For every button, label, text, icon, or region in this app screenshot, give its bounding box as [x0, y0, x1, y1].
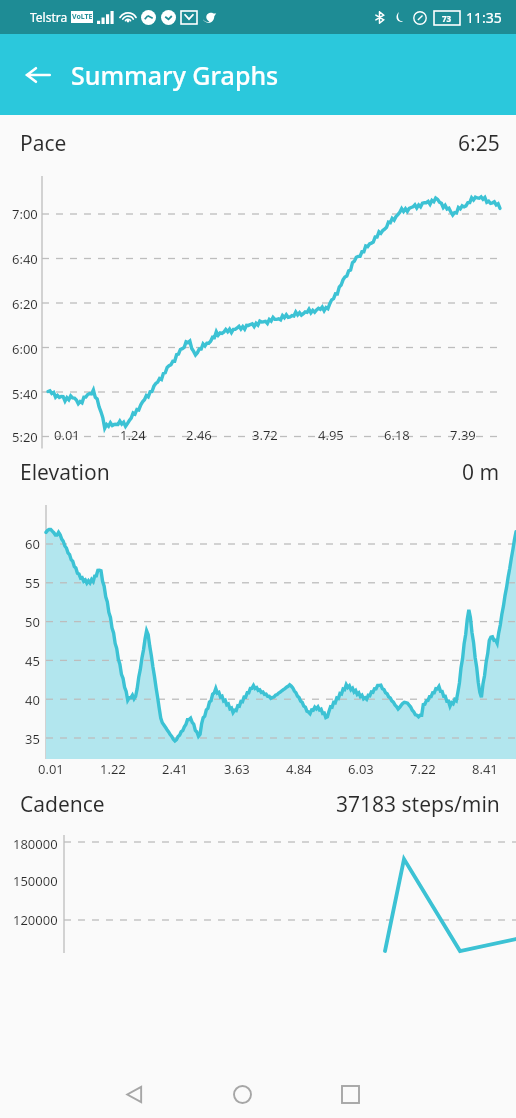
staticText: 37183 steps/min: [336, 790, 500, 819]
staticText: 55: [25, 574, 40, 592]
staticText: 7.22: [410, 760, 436, 778]
staticText: 1.22: [100, 760, 126, 778]
staticText: 180000: [13, 835, 58, 851]
staticText: 150000: [13, 872, 58, 890]
staticText: 45: [25, 652, 40, 670]
staticText: 6:20: [12, 295, 38, 313]
staticText: 7:00: [12, 205, 38, 223]
staticText: 5:20: [12, 428, 38, 446]
staticText: 3.63: [224, 760, 250, 778]
button[interactable]: Recent apps: [328, 1072, 372, 1116]
staticText: 5:40: [12, 385, 38, 403]
staticText: 60: [25, 535, 40, 553]
staticText: 2.46: [186, 426, 212, 444]
staticText: Elevation: [20, 458, 110, 487]
staticText: 50: [25, 613, 40, 631]
staticText: 7.39: [450, 426, 476, 444]
staticText: 0.01: [38, 760, 64, 778]
staticText: 40: [25, 691, 40, 709]
staticText: 73: [442, 13, 452, 24]
button[interactable]: Home: [220, 1072, 264, 1116]
staticText: 120000: [13, 911, 58, 929]
staticText: 0.01: [54, 426, 80, 444]
staticText: 1.24: [120, 426, 146, 444]
staticText: VoLTE: [72, 12, 93, 22]
staticText: 2.41: [162, 760, 188, 778]
staticText: 6:40: [12, 250, 38, 268]
staticText: 6.03: [348, 760, 374, 778]
staticText: 8.41: [472, 760, 498, 778]
staticText: 35: [25, 730, 40, 748]
staticText: 0 m: [462, 458, 500, 487]
staticText: Summary Graphs: [71, 58, 279, 92]
staticText: Telstra: [30, 9, 68, 25]
staticText: 3.72: [252, 426, 278, 444]
button[interactable]: Back: [14, 51, 62, 99]
staticText: 4.95: [318, 426, 344, 444]
staticText: Cadence: [20, 790, 105, 819]
staticText: 6:25: [458, 129, 500, 158]
button[interactable]: Back: [112, 1072, 156, 1116]
staticText: 6.18: [384, 426, 410, 444]
staticText: Pace: [20, 129, 67, 158]
staticText: 4.84: [286, 760, 312, 778]
staticText: 11:35: [466, 8, 502, 27]
staticText: 6:00: [12, 340, 38, 358]
